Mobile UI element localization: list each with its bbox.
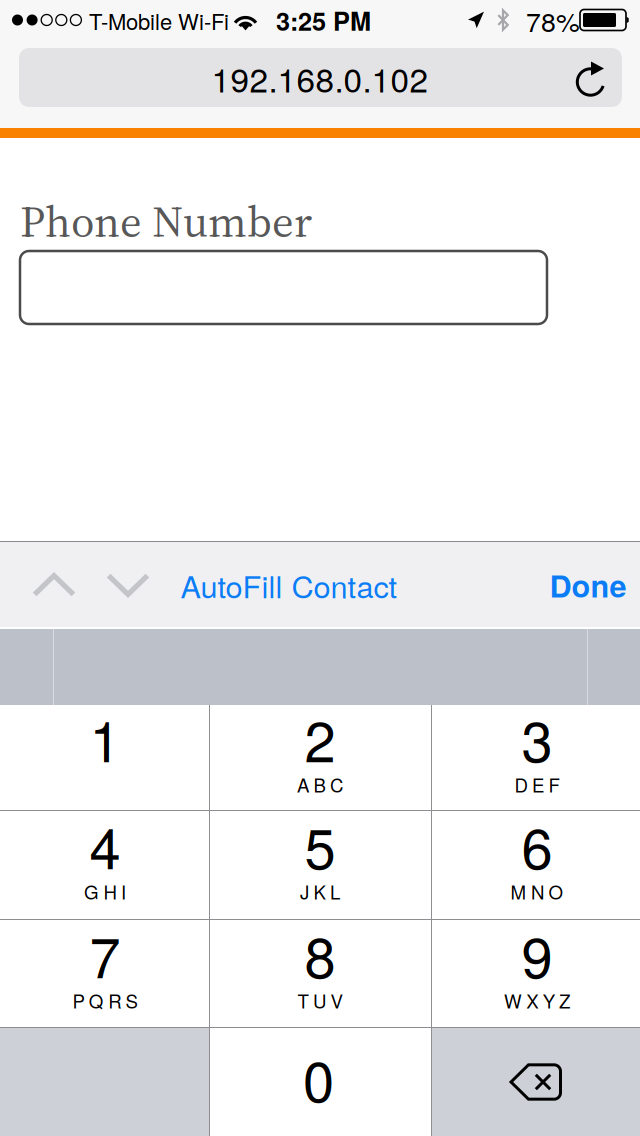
staticText: A	[297, 771, 309, 798]
staticText: U	[313, 987, 326, 1014]
staticText: H	[103, 878, 116, 905]
staticText: X	[526, 987, 538, 1014]
staticText: F	[548, 771, 559, 798]
button[interactable]: 7	[0, 920, 209, 1027]
staticText: Y	[543, 987, 555, 1014]
staticText: M	[511, 878, 527, 905]
staticText: I	[121, 878, 126, 905]
button[interactable]: Previous field	[14, 542, 94, 627]
staticText: N	[531, 878, 544, 905]
staticText: T	[298, 987, 309, 1014]
staticText: 3	[521, 698, 552, 778]
staticText: P	[72, 987, 84, 1014]
staticText: 0	[303, 1038, 334, 1118]
staticText: Z	[559, 987, 570, 1014]
staticText: Phone Number	[20, 191, 312, 251]
button[interactable]: Done	[530, 542, 640, 627]
staticText: 78%	[526, 1, 580, 40]
staticText: W	[504, 987, 522, 1014]
staticText: V	[330, 987, 342, 1014]
staticText: 8	[304, 914, 335, 994]
staticText: S	[126, 987, 138, 1014]
button[interactable]: 9	[432, 920, 640, 1027]
button[interactable]: 2	[210, 705, 431, 810]
button[interactable]: 3	[432, 705, 640, 810]
staticText: 9	[521, 914, 552, 994]
staticText: Q	[89, 987, 104, 1014]
staticText: T-Mobile Wi-Fi	[89, 5, 229, 36]
staticText: 7	[89, 914, 120, 994]
button[interactable]: AutoFill Contact	[167, 542, 411, 627]
staticText: AutoFill Contact	[180, 563, 397, 607]
button[interactable]: Next field	[88, 542, 168, 627]
staticText: 3:25 PM	[276, 2, 371, 39]
staticText: O	[548, 878, 563, 905]
staticText: J	[300, 878, 309, 905]
staticText: R	[108, 987, 121, 1014]
button[interactable]: 5	[210, 811, 431, 919]
staticText: 6	[521, 805, 552, 885]
staticText: 192.168.0.102	[211, 54, 428, 102]
button[interactable]: 1	[0, 705, 209, 810]
staticText: D	[515, 771, 528, 798]
staticText: C	[330, 771, 343, 798]
button[interactable]: 0	[210, 1028, 431, 1136]
button[interactable]: 4	[0, 811, 209, 919]
staticText: 5	[304, 805, 335, 885]
staticText: 2	[304, 698, 335, 778]
staticText: Done	[549, 563, 626, 607]
staticText: 1	[89, 698, 120, 778]
staticText: B	[313, 771, 325, 798]
button[interactable]: 6	[432, 811, 640, 919]
staticText: L	[330, 878, 340, 905]
staticText: G	[84, 878, 99, 905]
staticText: 4	[89, 805, 120, 885]
button[interactable]: Reload	[561, 50, 623, 109]
button[interactable]: Delete	[432, 1028, 640, 1136]
staticText: E	[532, 771, 544, 798]
button[interactable]: 8	[210, 920, 431, 1027]
staticText: K	[313, 878, 325, 905]
